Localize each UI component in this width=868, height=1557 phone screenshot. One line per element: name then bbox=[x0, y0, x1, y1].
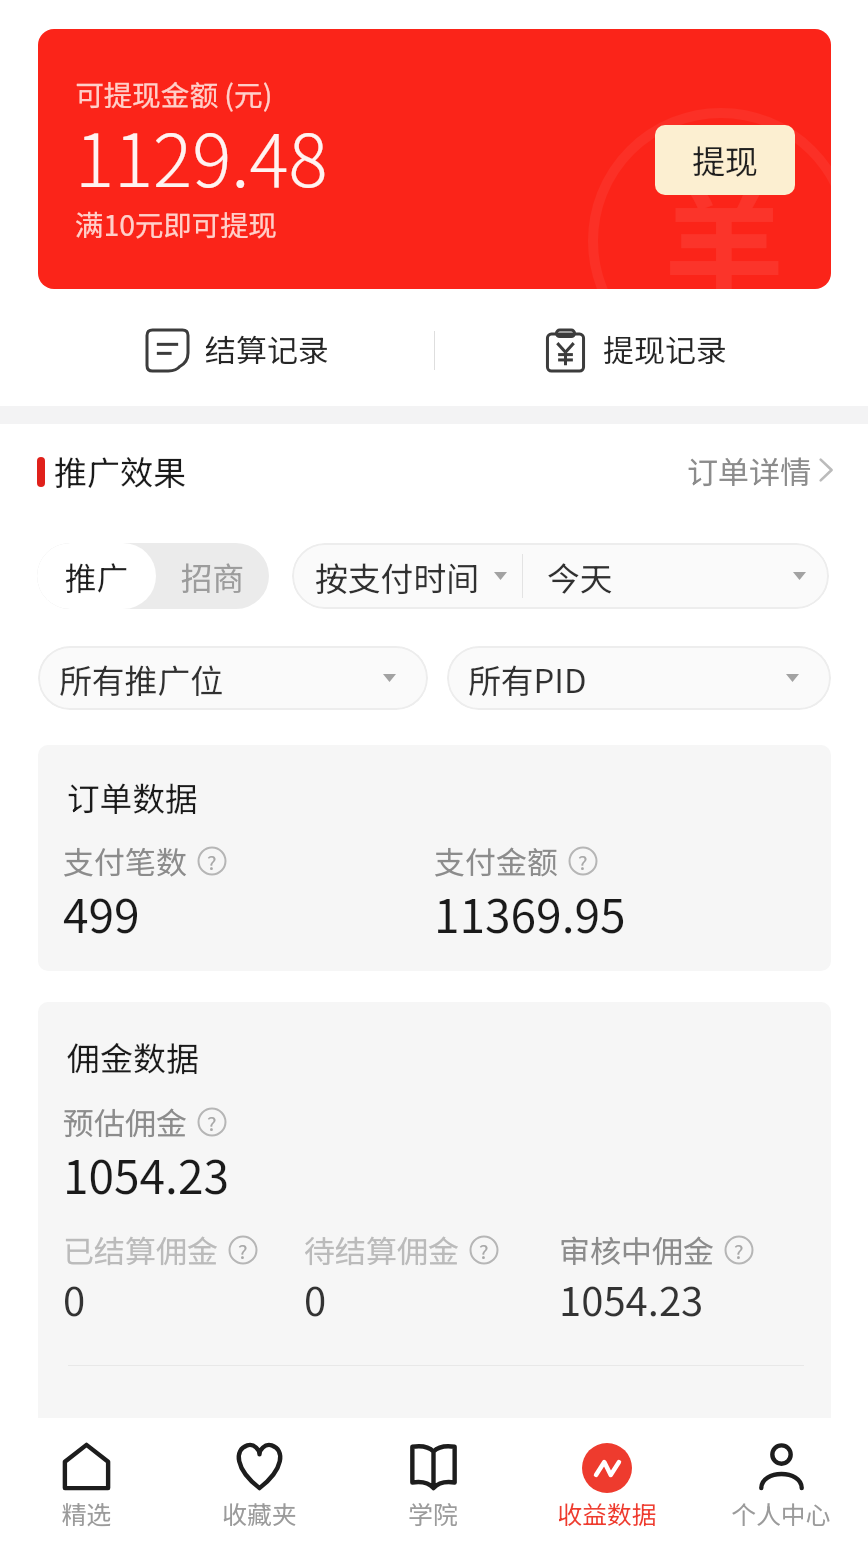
staticText: 结算记录 bbox=[205, 326, 329, 371]
staticText: 已结算佣金 bbox=[63, 1227, 218, 1272]
staticText: 个人中心 bbox=[694, 1495, 868, 1531]
staticText: 1054.23 bbox=[559, 1270, 704, 1328]
staticText: 可提现金额 (元) bbox=[75, 73, 273, 114]
staticText: 收藏夹 bbox=[173, 1495, 346, 1531]
staticText: 0 bbox=[304, 1270, 327, 1328]
staticText: ? bbox=[238, 1420, 248, 1448]
button[interactable]: 个人中心 bbox=[694, 1418, 868, 1557]
staticText: 审核中佣金 bbox=[559, 1227, 714, 1272]
staticText: 佣金数据 bbox=[67, 1033, 199, 1081]
button[interactable]: 精选 bbox=[0, 1418, 173, 1557]
staticText: 收益数据 bbox=[520, 1495, 694, 1531]
staticText: 订单详情 bbox=[687, 448, 811, 492]
staticText: 满10元即可提现 bbox=[75, 203, 277, 244]
staticText: 结算订单数 bbox=[63, 1411, 218, 1456]
other: 结算记录 bbox=[147, 330, 188, 371]
button[interactable]: 收益数据 bbox=[520, 1418, 694, 1557]
staticText: 1054.23 bbox=[63, 1141, 229, 1208]
staticText: 11369.95 bbox=[434, 880, 626, 947]
staticText: ? bbox=[207, 847, 217, 875]
staticText: 订单数据 bbox=[67, 773, 198, 820]
button[interactable]: 羊 bbox=[38, 29, 831, 289]
staticText: ? bbox=[578, 847, 588, 875]
staticText: 499 bbox=[63, 880, 140, 947]
button[interactable]: 提现记录 bbox=[545, 319, 727, 377]
button[interactable]: 结算记录 bbox=[147, 319, 329, 377]
other: 提现记录 bbox=[545, 330, 586, 371]
staticText: 羊 bbox=[664, 151, 784, 289]
staticText: ? bbox=[207, 1108, 217, 1136]
staticText: 所有PID bbox=[468, 655, 587, 702]
staticText: 按支付时间 bbox=[315, 553, 479, 600]
staticText: ? bbox=[734, 1236, 744, 1264]
button[interactable]: 学院 bbox=[346, 1418, 520, 1557]
button[interactable]: 所有推广位 bbox=[38, 646, 428, 710]
staticText: 提现 bbox=[692, 136, 758, 184]
button[interactable]: 今天 bbox=[523, 543, 829, 609]
button[interactable]: 提现 bbox=[655, 125, 795, 195]
staticText: ? bbox=[479, 1236, 489, 1264]
staticText: ? bbox=[238, 1236, 248, 1264]
button[interactable]: 所有PID bbox=[447, 646, 831, 710]
staticText: 1129.48 bbox=[75, 102, 328, 208]
staticText: 推广效果 bbox=[54, 447, 186, 495]
staticText: 招商 bbox=[181, 553, 245, 599]
staticText: 学院 bbox=[346, 1495, 520, 1531]
button[interactable]: 招商 bbox=[156, 543, 269, 609]
staticText: 待结算佣金 bbox=[304, 1227, 459, 1272]
button[interactable]: 订单详情 bbox=[687, 448, 833, 492]
staticText: 所有推广位 bbox=[59, 655, 223, 702]
button[interactable]: 按支付时间 bbox=[292, 543, 522, 609]
staticText: 0 bbox=[63, 1270, 86, 1328]
button[interactable]: 推广 bbox=[37, 543, 156, 609]
staticText: 支付金额 bbox=[434, 838, 558, 883]
staticText: 精选 bbox=[0, 1495, 173, 1531]
staticText: 提现记录 bbox=[603, 326, 727, 371]
staticText: 今天 bbox=[547, 553, 613, 600]
button[interactable]: 收藏夹 bbox=[173, 1418, 346, 1557]
staticText: 推广 bbox=[65, 553, 129, 599]
staticText: 预估佣金 bbox=[63, 1099, 187, 1144]
staticText: 支付笔数 bbox=[63, 838, 187, 883]
